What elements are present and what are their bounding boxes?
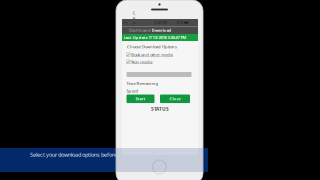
button[interactable]: Download bbox=[150, 26, 172, 34]
button[interactable]: Book and other media bbox=[126, 52, 174, 57]
staticText: Speed bbox=[126, 88, 138, 94]
staticText: Last Update 7/13/2018 3:30:47 PM bbox=[123, 35, 186, 40]
staticText: Start bbox=[135, 96, 145, 101]
staticText: Book and other media bbox=[131, 52, 173, 57]
staticText: Select your download options before star… bbox=[30, 151, 137, 158]
staticText: Time Remaining bbox=[126, 81, 158, 86]
staticText: Dashboard bbox=[129, 27, 151, 33]
staticText: Choose Download Options bbox=[127, 44, 177, 49]
button[interactable]: Close bbox=[160, 94, 190, 103]
staticText: 87% bbox=[176, 20, 183, 25]
staticText: Close bbox=[169, 96, 180, 101]
staticText: STATUS bbox=[151, 106, 169, 112]
button[interactable]: Dashboard bbox=[129, 26, 151, 34]
button[interactable]: Non media bbox=[126, 59, 156, 64]
staticText: Non media bbox=[131, 59, 152, 64]
staticText: Download bbox=[151, 27, 171, 33]
button[interactable]: Start bbox=[126, 94, 154, 103]
staticText: 3:30 PM bbox=[154, 20, 167, 25]
staticText: Carrier bbox=[133, 11, 136, 34]
